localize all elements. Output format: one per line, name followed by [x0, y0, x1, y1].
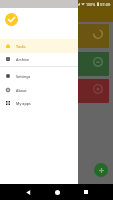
button[interactable]: Home — [50, 184, 64, 200]
staticText: 100% — [86, 2, 96, 7]
staticText: Settings — [16, 74, 31, 79]
staticText: My apps — [16, 101, 31, 106]
button[interactable]: Recent apps — [79, 184, 93, 200]
button[interactable] — [3, 24, 109, 48]
button[interactable] — [3, 52, 109, 76]
button[interactable]: Settings — [0, 69, 78, 83]
button[interactable]: Archive — [0, 52, 78, 66]
button[interactable]: Back — [21, 184, 35, 200]
button[interactable]: Add task — [94, 163, 108, 177]
button[interactable]: My apps — [0, 96, 78, 110]
staticText: About — [16, 88, 27, 93]
button[interactable] — [3, 79, 109, 103]
staticText: 07:00 — [100, 2, 111, 7]
button[interactable]: About — [0, 83, 78, 97]
button[interactable]: Tasks — [0, 39, 78, 53]
staticText: Archive — [16, 57, 30, 62]
staticText: Tasks — [16, 44, 26, 49]
